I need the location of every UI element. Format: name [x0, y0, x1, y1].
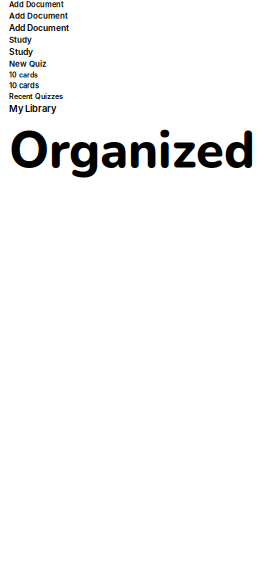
staticText: 10 cards	[9, 81, 39, 90]
staticText: Recent Quizzes	[9, 92, 63, 101]
staticText: Organized	[9, 116, 255, 185]
staticText: Add Document	[9, 0, 64, 9]
staticText: 10 cards	[9, 71, 38, 79]
staticText: Study	[9, 35, 32, 45]
staticText: New Quiz	[9, 59, 47, 69]
staticText: Study	[9, 47, 33, 57]
staticText: Add Document	[9, 23, 69, 33]
staticText: Add Document	[9, 11, 68, 21]
staticText: My Library	[9, 103, 56, 114]
